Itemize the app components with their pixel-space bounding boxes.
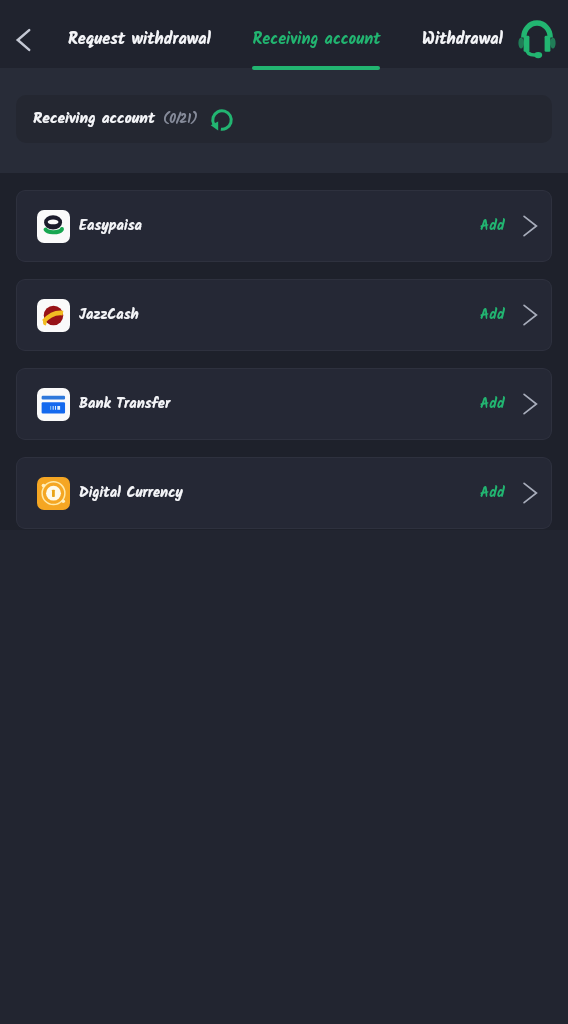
staticText: JazzCash [79,304,139,327]
staticText: Add [480,393,505,416]
button[interactable]: Withdrawal [362,27,562,53]
button[interactable]: Easypaisa [16,190,552,262]
staticText: (0/21) [163,109,198,130]
staticText: Add [480,215,505,238]
staticText: Receiving account [33,107,155,132]
button[interactable]: Refresh [210,108,234,132]
staticText: Add [480,482,505,505]
staticText: Request withdrawal [68,27,211,53]
button[interactable]: Back [3,19,45,61]
button[interactable]: Bank Transfer [16,368,552,440]
button[interactable]: JazzCash [16,279,552,351]
button[interactable]: Digital Currency [16,457,552,529]
staticText: Withdrawal [422,27,503,53]
staticText: Digital Currency [79,482,183,505]
staticText: Easypaisa [79,215,142,238]
staticText: Bank Transfer [79,393,171,416]
staticText: Receiving account [252,27,381,53]
button[interactable]: Receiving account [216,27,416,70]
staticText: Add [480,304,505,327]
button[interactable]: Request withdrawal [39,27,239,53]
button[interactable]: Customer service [515,17,559,61]
